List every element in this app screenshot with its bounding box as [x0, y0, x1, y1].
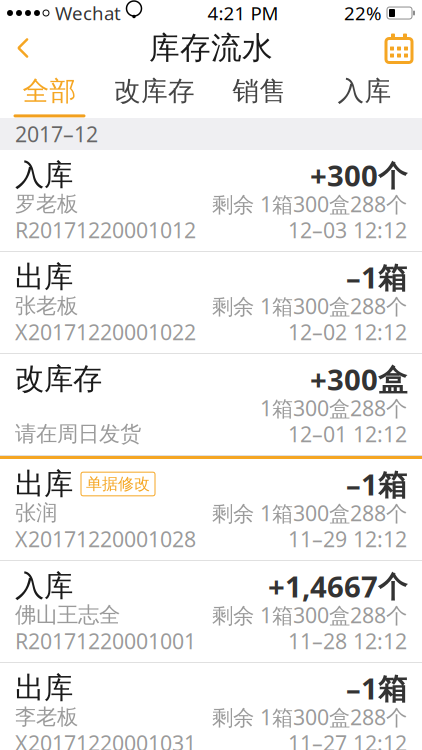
button[interactable]: 入库: [0, 150, 422, 252]
staticText: 单据修改: [86, 474, 150, 494]
staticText: 请在周日发货: [15, 421, 141, 447]
staticText: 12–03 12:12: [288, 216, 407, 244]
staticText: 销售: [232, 75, 286, 107]
button[interactable]: Back: [0, 26, 49, 70]
staticText: 12–01 12:12: [288, 420, 407, 448]
staticText: 剩余 1箱300盒288个: [212, 601, 407, 629]
staticText: R20171220001012: [15, 216, 196, 244]
staticText: –1箱: [346, 257, 407, 296]
staticText: 入库: [337, 75, 391, 107]
staticText: 罗老板: [15, 191, 78, 217]
button[interactable]: 出库: [0, 663, 422, 750]
button[interactable]: 改库存: [0, 354, 422, 456]
staticText: 全部: [22, 75, 76, 107]
button[interactable]: 出库: [0, 252, 422, 354]
staticText: 2017–12: [15, 120, 98, 148]
staticText: 出库: [15, 670, 73, 706]
staticText: 入库: [15, 157, 73, 193]
staticText: 剩余 1箱300盒288个: [212, 499, 407, 527]
button[interactable]: 出库: [0, 456, 422, 561]
staticText: –1箱: [346, 464, 407, 503]
staticText: Wechat: [55, 1, 121, 25]
staticText: 张老板: [15, 293, 78, 319]
staticText: –1箱: [346, 668, 407, 707]
staticText: 剩余 1箱300盒288个: [212, 703, 407, 731]
staticText: +1,4667个: [268, 566, 407, 605]
staticText: X20171220001028: [15, 525, 196, 553]
staticText: +300盒: [310, 359, 407, 398]
button[interactable]: 入库: [0, 561, 422, 663]
staticText: 剩余 1箱300盒288个: [212, 190, 407, 218]
staticText: 出库: [15, 466, 73, 502]
button[interactable]: 全部: [0, 70, 102, 118]
staticText: 改库存: [114, 75, 195, 107]
staticText: X20171220001031: [15, 729, 196, 750]
staticText: 11–28 12:12: [288, 627, 407, 655]
staticText: R20171220001001: [15, 627, 196, 655]
staticText: +300个: [310, 155, 407, 194]
staticText: 22%: [344, 1, 382, 25]
staticText: 4:21 PM: [207, 1, 278, 25]
staticText: X20171220001022: [15, 318, 196, 346]
staticText: 李老板: [15, 704, 78, 730]
staticText: 剩余 1箱300盒288个: [212, 292, 407, 320]
button[interactable]: 改库存: [102, 70, 207, 118]
staticText: 张润: [15, 500, 57, 526]
staticText: 出库: [15, 259, 73, 295]
staticText: 入库: [15, 568, 73, 604]
staticText: 改库存: [15, 361, 102, 397]
staticText: 11–27 12:12: [288, 729, 407, 750]
staticText: 佛山王志全: [15, 602, 120, 628]
staticText: 12–02 12:12: [288, 318, 407, 346]
staticText: 库存流水: [149, 29, 273, 67]
button[interactable]: 销售: [207, 70, 312, 118]
button[interactable]: 入库: [312, 70, 417, 118]
button[interactable]: Select date: [373, 26, 422, 70]
staticText: 1箱300盒288个: [260, 394, 407, 422]
staticText: 11–29 12:12: [288, 525, 407, 553]
